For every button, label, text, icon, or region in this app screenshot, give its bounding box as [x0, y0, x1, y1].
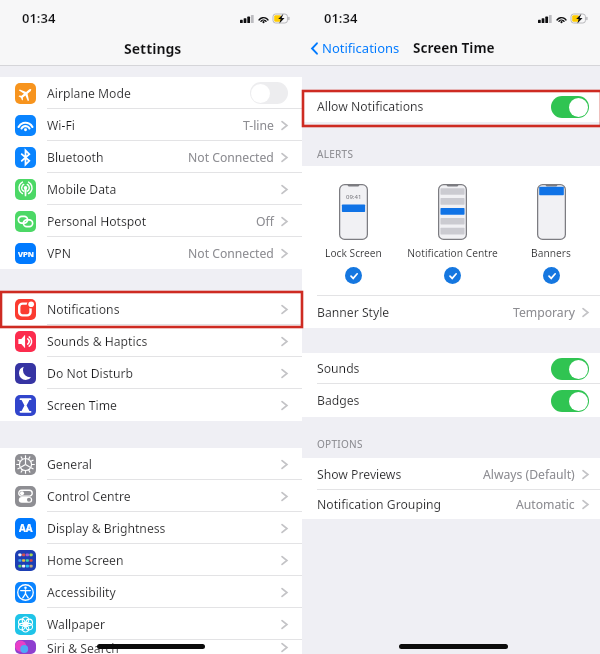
button[interactable]: Notifications	[0, 293, 302, 325]
staticText: Airplane Mode	[47, 85, 131, 102]
staticText: Automatic	[516, 496, 575, 513]
button[interactable]: 09:41	[304, 184, 402, 284]
staticText: T-line	[243, 117, 274, 134]
staticText: Wallpaper	[47, 616, 105, 633]
staticText: 01:34	[22, 9, 56, 27]
staticText: Personal Hotspot	[47, 213, 147, 230]
staticText: Screen Time	[47, 397, 117, 414]
staticText: 01:34	[324, 9, 358, 27]
staticText: Not Connected	[188, 149, 274, 166]
staticText: Always (Default)	[483, 466, 575, 483]
button[interactable]: Airplane Mode	[0, 77, 302, 109]
button[interactable]: Lock Screen enabled	[345, 267, 362, 284]
staticText: Notification Centre	[407, 246, 498, 260]
staticText: Lock Screen	[325, 246, 382, 260]
staticText: VPN	[47, 245, 71, 262]
button[interactable]: Badges	[302, 384, 600, 417]
button[interactable]: Wallpaper	[0, 608, 302, 640]
staticText: ALERTS	[317, 147, 354, 161]
staticText: Show Previews	[317, 466, 402, 483]
staticText: Wi-Fi	[47, 117, 75, 134]
staticText: Do Not Disturb	[47, 365, 133, 382]
staticText: General	[47, 456, 92, 473]
button[interactable]: Off	[250, 82, 288, 104]
staticText: Notifications	[322, 39, 400, 57]
button[interactable]: Sounds	[302, 353, 600, 384]
button[interactable]: Bluetooth	[0, 141, 302, 173]
staticText: Display & Brightness	[47, 520, 166, 537]
staticText: Home Screen	[47, 552, 124, 569]
button[interactable]: Siri & Search	[0, 640, 302, 654]
button[interactable]: Screen Time	[0, 389, 302, 421]
button[interactable]: Sounds & Haptics	[0, 325, 302, 357]
staticText: Off	[256, 213, 274, 230]
button[interactable]: Banners	[502, 184, 600, 284]
button[interactable]: On	[551, 390, 589, 412]
staticText: Temporary	[513, 304, 575, 321]
staticText: Banners	[531, 246, 571, 260]
button[interactable]: Do Not Disturb	[0, 357, 302, 389]
button[interactable]: Banner Style	[302, 296, 600, 328]
button[interactable]: Wi-Fi	[0, 109, 302, 141]
button[interactable]: Mobile Data	[0, 173, 302, 205]
button[interactable]: Banners enabled	[543, 267, 560, 284]
button[interactable]: Home Screen	[0, 544, 302, 576]
button[interactable]: Notification Centre enabled	[444, 267, 461, 284]
button[interactable]: Control Centre	[0, 480, 302, 512]
staticText: Notifications	[47, 301, 120, 318]
staticText: Bluetooth	[47, 149, 104, 166]
staticText: VPN	[18, 249, 34, 259]
staticText: Banner Style	[317, 304, 390, 321]
button[interactable]: Notification Centre	[403, 184, 501, 284]
staticText: Settings	[124, 39, 182, 58]
staticText: Screen Time	[413, 39, 495, 57]
button[interactable]: AA	[0, 512, 302, 544]
staticText: OPTIONS	[317, 437, 363, 451]
staticText: Siri & Search	[47, 640, 119, 654]
staticText: Badges	[317, 392, 360, 409]
staticText: Mobile Data	[47, 181, 117, 198]
staticText: Allow Notifications	[317, 98, 424, 115]
button[interactable]: Allow Notifications	[302, 91, 600, 122]
staticText: Sounds & Haptics	[47, 333, 148, 350]
staticText: AA	[19, 522, 33, 535]
button[interactable]: On	[551, 358, 589, 380]
button[interactable]: On	[551, 96, 589, 118]
button[interactable]: Back to Notifications	[311, 39, 400, 57]
staticText: Accessibility	[47, 584, 116, 601]
staticText: Notification Grouping	[317, 496, 442, 513]
button[interactable]: Show Previews	[302, 458, 600, 490]
button[interactable]: Accessibility	[0, 576, 302, 608]
button[interactable]: General	[0, 448, 302, 480]
staticText: 09:41	[346, 193, 362, 201]
button[interactable]: VPN	[0, 237, 302, 269]
button[interactable]: Notification Grouping	[302, 490, 600, 519]
staticText: Control Centre	[47, 488, 131, 505]
button[interactable]: Personal Hotspot	[0, 205, 302, 237]
staticText: Sounds	[317, 360, 360, 377]
staticText: Not Connected	[188, 245, 274, 262]
